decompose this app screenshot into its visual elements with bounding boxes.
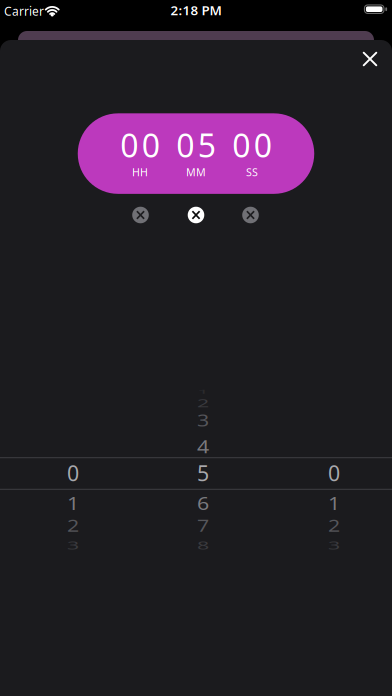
staticText: HH (132, 165, 148, 179)
staticText: 00 (120, 124, 160, 166)
staticText: 4 (197, 432, 209, 460)
staticText: 1 (328, 489, 340, 517)
staticText: 0 (67, 459, 79, 487)
staticText: 7 (197, 512, 209, 540)
staticText: 2 (328, 512, 340, 540)
button[interactable]: 05 (168, 122, 224, 184)
staticText: 1 (67, 489, 79, 517)
staticText: 2:18 PM (170, 1, 221, 19)
staticText: 3 (67, 531, 79, 559)
staticText: Carrier (4, 3, 44, 19)
staticText: 3 (197, 406, 209, 435)
button[interactable]: Clear hours (128, 203, 153, 227)
staticText: 5 (197, 459, 209, 487)
staticText: 0 (328, 459, 340, 487)
button[interactable]: 00 (224, 122, 280, 184)
staticText: 3 (328, 531, 340, 559)
staticText: 05 (176, 124, 216, 166)
button[interactable]: 00 (112, 122, 168, 184)
button[interactable]: Clear seconds (238, 203, 263, 227)
staticText: MM (186, 165, 206, 179)
staticText: 8 (197, 531, 209, 559)
button[interactable]: Close (355, 44, 385, 74)
staticText: 2 (197, 389, 209, 417)
staticText: SS (246, 165, 258, 179)
staticText: 2 (67, 512, 79, 540)
staticText: 00 (232, 124, 272, 166)
button[interactable]: Clear minutes (184, 203, 208, 227)
staticText: 6 (197, 489, 209, 517)
staticText: 1 (197, 377, 209, 406)
